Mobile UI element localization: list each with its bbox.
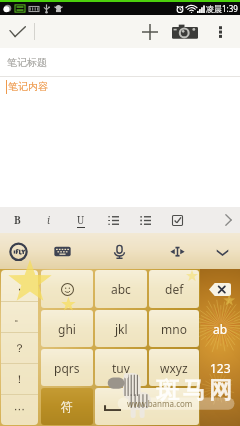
button[interactable]: i: [33, 207, 65, 233]
button[interactable]: Bulleted list: [129, 207, 161, 233]
button[interactable]: ，: [1, 270, 38, 301]
staticText: ⋯: [14, 403, 25, 416]
staticText: ！: [14, 372, 25, 386]
button[interactable]: pqrs: [41, 349, 93, 386]
button[interactable]: B: [1, 207, 33, 233]
staticText: 符: [61, 399, 73, 414]
button[interactable]: [95, 388, 199, 425]
staticText: mno: [161, 321, 187, 337]
staticText: wxyz: [160, 360, 188, 376]
button[interactable]: Hide keyboard: [206, 233, 238, 269]
button[interactable]: English mode: [200, 309, 240, 348]
button[interactable]: U: [65, 207, 97, 233]
staticText: ？: [14, 341, 25, 355]
button[interactable]: jkl: [95, 310, 147, 347]
staticText: 123: [210, 360, 231, 376]
button[interactable]: 符: [41, 388, 93, 425]
staticText: 笔记标题: [7, 56, 47, 69]
button[interactable]: Delete: [200, 269, 240, 309]
button[interactable]: ⋯: [1, 394, 38, 425]
button[interactable]: ？: [1, 332, 38, 363]
staticText: i: [47, 213, 51, 227]
button[interactable]: Enter: [200, 387, 240, 426]
button[interactable]: Voice input: [103, 233, 135, 269]
staticText: abc: [111, 281, 131, 297]
button[interactable]: [41, 270, 93, 308]
button[interactable]: Add: [134, 15, 166, 48]
staticText: B: [14, 213, 21, 227]
staticText: tuv: [112, 360, 130, 376]
button[interactable]: 。: [1, 301, 38, 332]
button[interactable]: tuv: [95, 349, 147, 386]
button[interactable]: More options: [207, 15, 233, 48]
button[interactable]: More tools: [216, 207, 240, 233]
button[interactable]: 笔记标题: [0, 48, 240, 76]
button[interactable]: Numbers: [200, 348, 240, 387]
button[interactable]: Numbered list: [97, 207, 129, 233]
staticText: 笔记内容: [8, 80, 48, 93]
button[interactable]: abc: [95, 270, 147, 308]
staticText: 斑马网: [156, 376, 236, 405]
staticText: ghi: [58, 321, 76, 337]
button[interactable]: ！: [1, 363, 38, 394]
button[interactable]: ghi: [41, 310, 93, 347]
staticText: pqrs: [54, 360, 80, 376]
button[interactable]: def: [149, 270, 199, 308]
staticText: ab: [213, 321, 228, 337]
button[interactable]: 笔记内容: [0, 77, 240, 207]
button[interactable]: wxyz: [149, 349, 199, 386]
staticText: 。: [14, 310, 25, 324]
staticText: U: [77, 213, 85, 227]
staticText: def: [165, 281, 184, 297]
button[interactable]: Done: [0, 15, 34, 48]
button[interactable]: Keyboard layout: [46, 233, 78, 269]
staticText: www.banma.com: [127, 398, 193, 409]
button[interactable]: Input method: [2, 233, 34, 269]
button[interactable]: Move cursor: [161, 233, 193, 269]
button[interactable]: Camera: [170, 15, 200, 48]
staticText: ，: [14, 279, 25, 293]
button[interactable]: mno: [149, 310, 199, 347]
staticText: jkl: [115, 321, 128, 337]
staticText: 凌晨1:39: [206, 3, 238, 14]
button[interactable]: Checklist: [161, 207, 193, 233]
